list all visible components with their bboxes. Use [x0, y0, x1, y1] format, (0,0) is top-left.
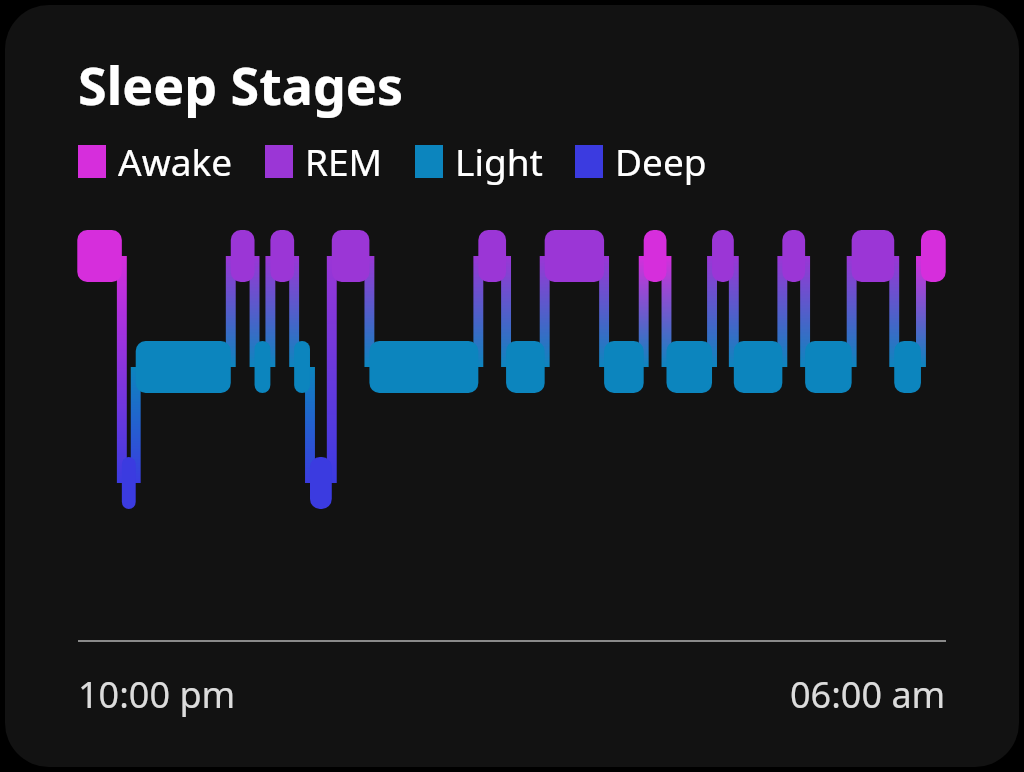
staticText: Light — [455, 136, 543, 186]
staticText: 06:00 am — [790, 670, 946, 719]
staticText: Deep — [615, 136, 707, 186]
button[interactable]: REM — [265, 136, 383, 186]
button[interactable]: Awake — [78, 136, 233, 186]
button[interactable]: Sleep Stages — [5, 5, 1019, 767]
button[interactable]: Deep — [575, 136, 707, 186]
staticText: 10:00 pm — [78, 670, 236, 719]
staticText: Sleep Stages — [78, 49, 404, 120]
staticText: Awake — [118, 136, 233, 186]
staticText: REM — [305, 136, 383, 186]
button[interactable]: Light — [415, 136, 543, 186]
button[interactable]: Sleep stages hypnogram — [5, 216, 1019, 546]
